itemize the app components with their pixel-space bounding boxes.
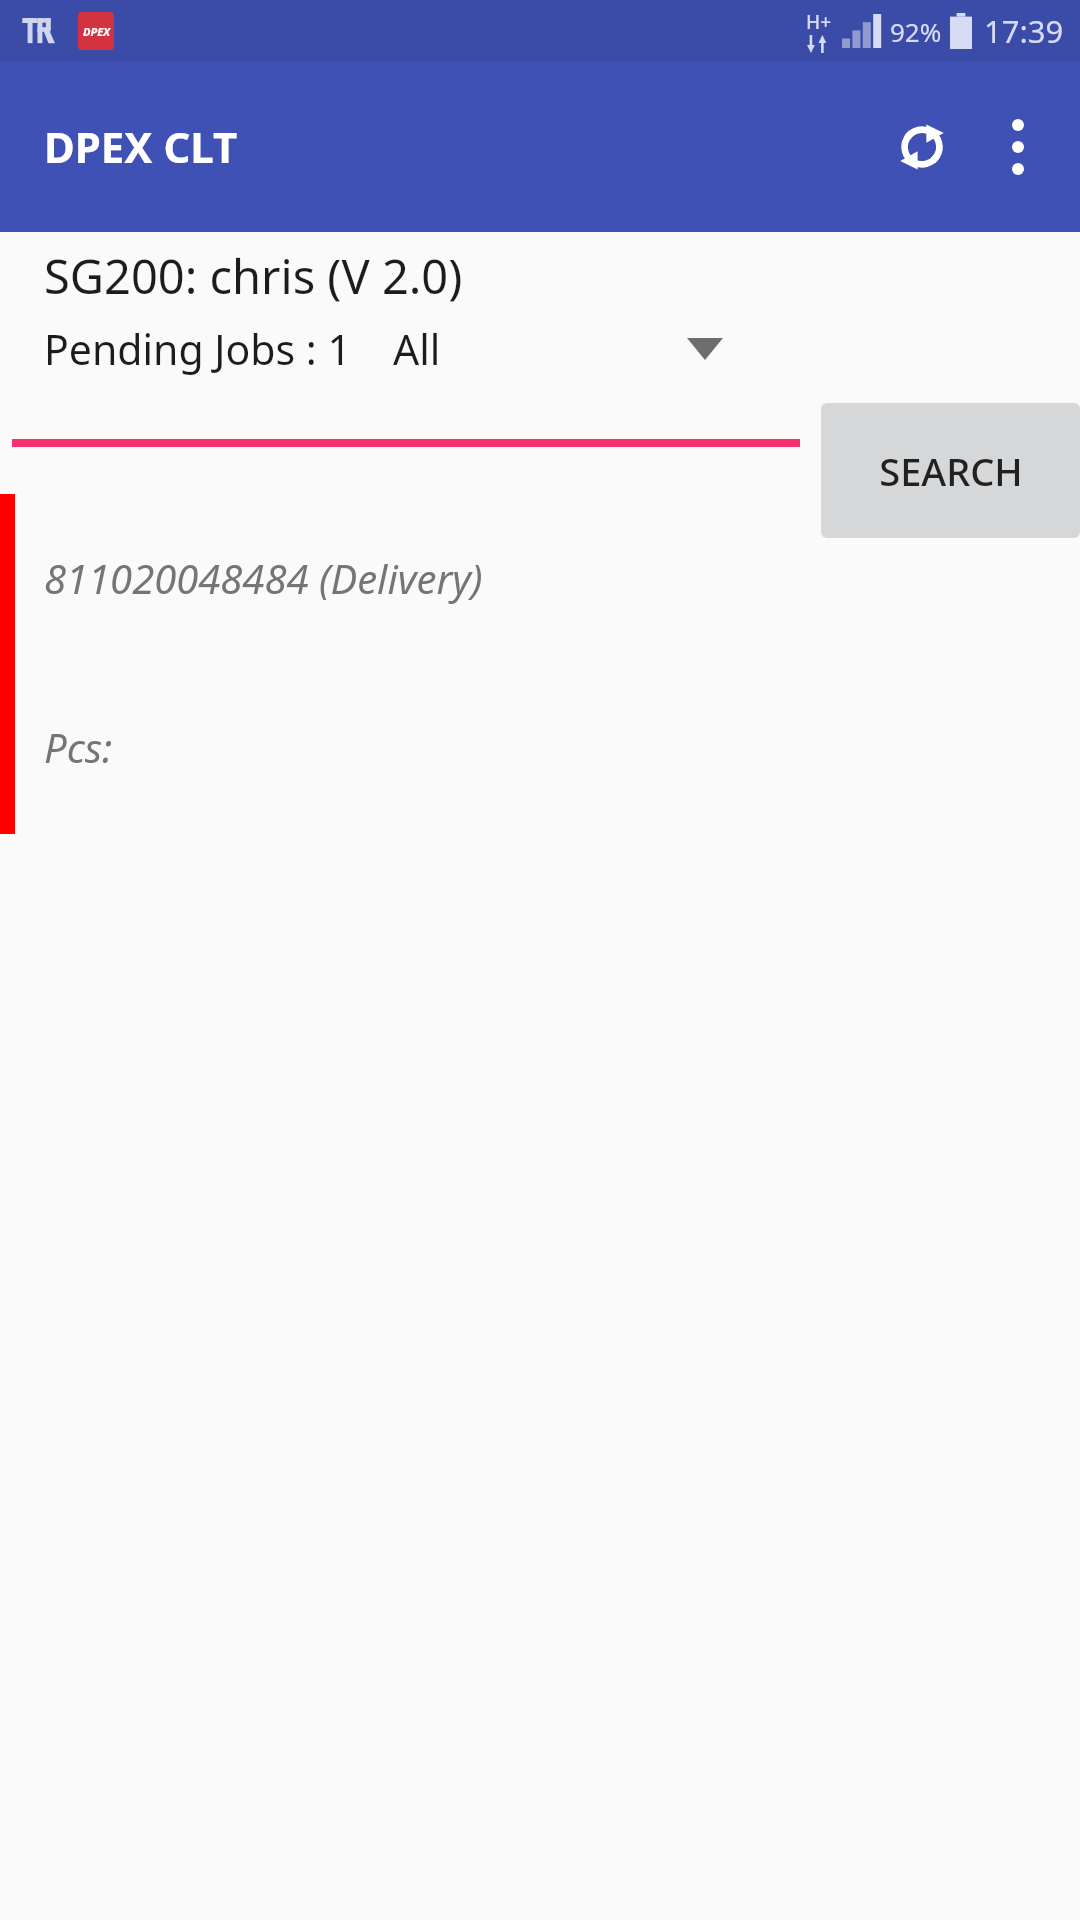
button[interactable]: SEARCH xyxy=(821,403,1080,538)
button[interactable]: Refresh xyxy=(874,99,970,195)
staticText: All xyxy=(393,321,441,377)
staticText: 17:39 xyxy=(984,10,1064,52)
staticText: 92% xyxy=(890,14,942,49)
staticText: SG200: chris (V 2.0) xyxy=(44,244,463,308)
staticText: SEARCH xyxy=(879,445,1023,497)
staticText: 811020048484 (Delivery) xyxy=(44,551,483,605)
staticText: DPEX xyxy=(83,24,110,39)
button[interactable]: More options xyxy=(970,99,1066,195)
staticText: Pcs: xyxy=(44,720,113,774)
button[interactable]: 811020048484 (Delivery) xyxy=(0,494,1080,834)
staticText: DPEX CLT xyxy=(44,118,238,175)
staticText: Pending Jobs : 1 xyxy=(44,321,351,377)
staticText: H+ xyxy=(806,9,832,35)
button[interactable]: All xyxy=(393,321,723,377)
